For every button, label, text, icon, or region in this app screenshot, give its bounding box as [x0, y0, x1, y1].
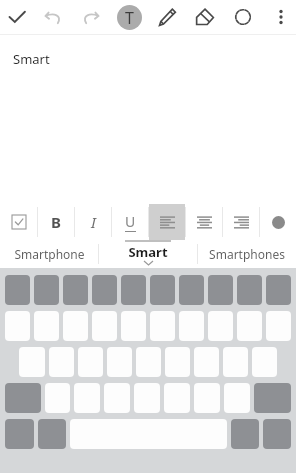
button[interactable]: Backspace [254, 383, 291, 413]
button[interactable]: Key [107, 347, 132, 377]
button[interactable]: Key [150, 275, 175, 305]
button[interactable]: Key [208, 275, 233, 305]
staticText: Smartphone [14, 246, 85, 262]
button[interactable]: Key [237, 311, 262, 341]
button[interactable]: Pen [148, 0, 186, 34]
button[interactable]: Align right [223, 204, 259, 240]
button[interactable]: Key [179, 275, 204, 305]
button[interactable]: Key [164, 383, 190, 413]
button[interactable]: Key [5, 311, 30, 341]
button[interactable]: Align center [186, 204, 222, 240]
button[interactable]: Done [0, 0, 34, 34]
button[interactable]: Smartphones [198, 240, 296, 268]
button[interactable]: Key [252, 347, 277, 377]
button[interactable]: Key [63, 275, 88, 305]
button[interactable]: Key [34, 311, 59, 341]
button[interactable]: Smartphone [0, 240, 98, 268]
button[interactable]: Smart [99, 240, 197, 268]
button[interactable]: Key [92, 311, 117, 341]
button[interactable]: Key [45, 383, 70, 413]
button[interactable]: Key [179, 311, 204, 341]
button[interactable]: Key [5, 275, 30, 305]
button[interactable]: Key [19, 347, 45, 377]
button[interactable]: Key [49, 347, 74, 377]
button[interactable]: Key [121, 311, 146, 341]
staticText: Smart [13, 50, 50, 68]
button[interactable]: Key [104, 383, 130, 413]
button[interactable]: Key [266, 311, 291, 341]
button[interactable]: Underline [112, 204, 148, 240]
staticText: B [51, 212, 61, 232]
button[interactable]: Key [224, 383, 250, 413]
button[interactable]: Key [150, 311, 175, 341]
button[interactable]: Key [121, 275, 146, 305]
button[interactable]: Symbols [5, 419, 34, 449]
staticText: Smart [128, 243, 168, 261]
button[interactable]: Key [165, 347, 190, 377]
button[interactable]: More options [266, 0, 296, 34]
button[interactable]: Emoji [38, 419, 66, 449]
staticText: I [91, 212, 96, 232]
button[interactable]: Key [194, 347, 219, 377]
button[interactable]: Key [194, 383, 220, 413]
button[interactable]: Checklist [0, 204, 37, 240]
button[interactable]: Key [266, 275, 291, 305]
button[interactable]: Key [134, 383, 160, 413]
button[interactable]: Key [92, 275, 117, 305]
button[interactable]: Enter [263, 419, 291, 449]
button[interactable]: Key [208, 311, 233, 341]
button[interactable]: Key [34, 275, 59, 305]
button[interactable]: Italic [75, 204, 111, 240]
button[interactable]: Key [223, 347, 248, 377]
staticText: U [125, 212, 136, 231]
button[interactable]: Key [63, 311, 88, 341]
button[interactable]: Key [78, 347, 103, 377]
button[interactable]: Align left [149, 204, 185, 240]
button[interactable]: Select [224, 0, 262, 34]
button[interactable]: Bold [38, 204, 74, 240]
staticText: T [125, 7, 134, 29]
button[interactable]: Key [74, 383, 100, 413]
button[interactable]: Eraser [186, 0, 224, 34]
button[interactable]: Undo [34, 0, 72, 34]
button[interactable]: Text color [260, 204, 296, 240]
button[interactable]: Shift [5, 383, 41, 413]
button[interactable]: Period [231, 419, 259, 449]
button[interactable]: Key [237, 275, 262, 305]
button[interactable]: Text tool [110, 0, 148, 34]
staticText: Smartphones [209, 246, 285, 262]
button[interactable]: Key [136, 347, 161, 377]
button[interactable]: Redo [72, 0, 110, 34]
